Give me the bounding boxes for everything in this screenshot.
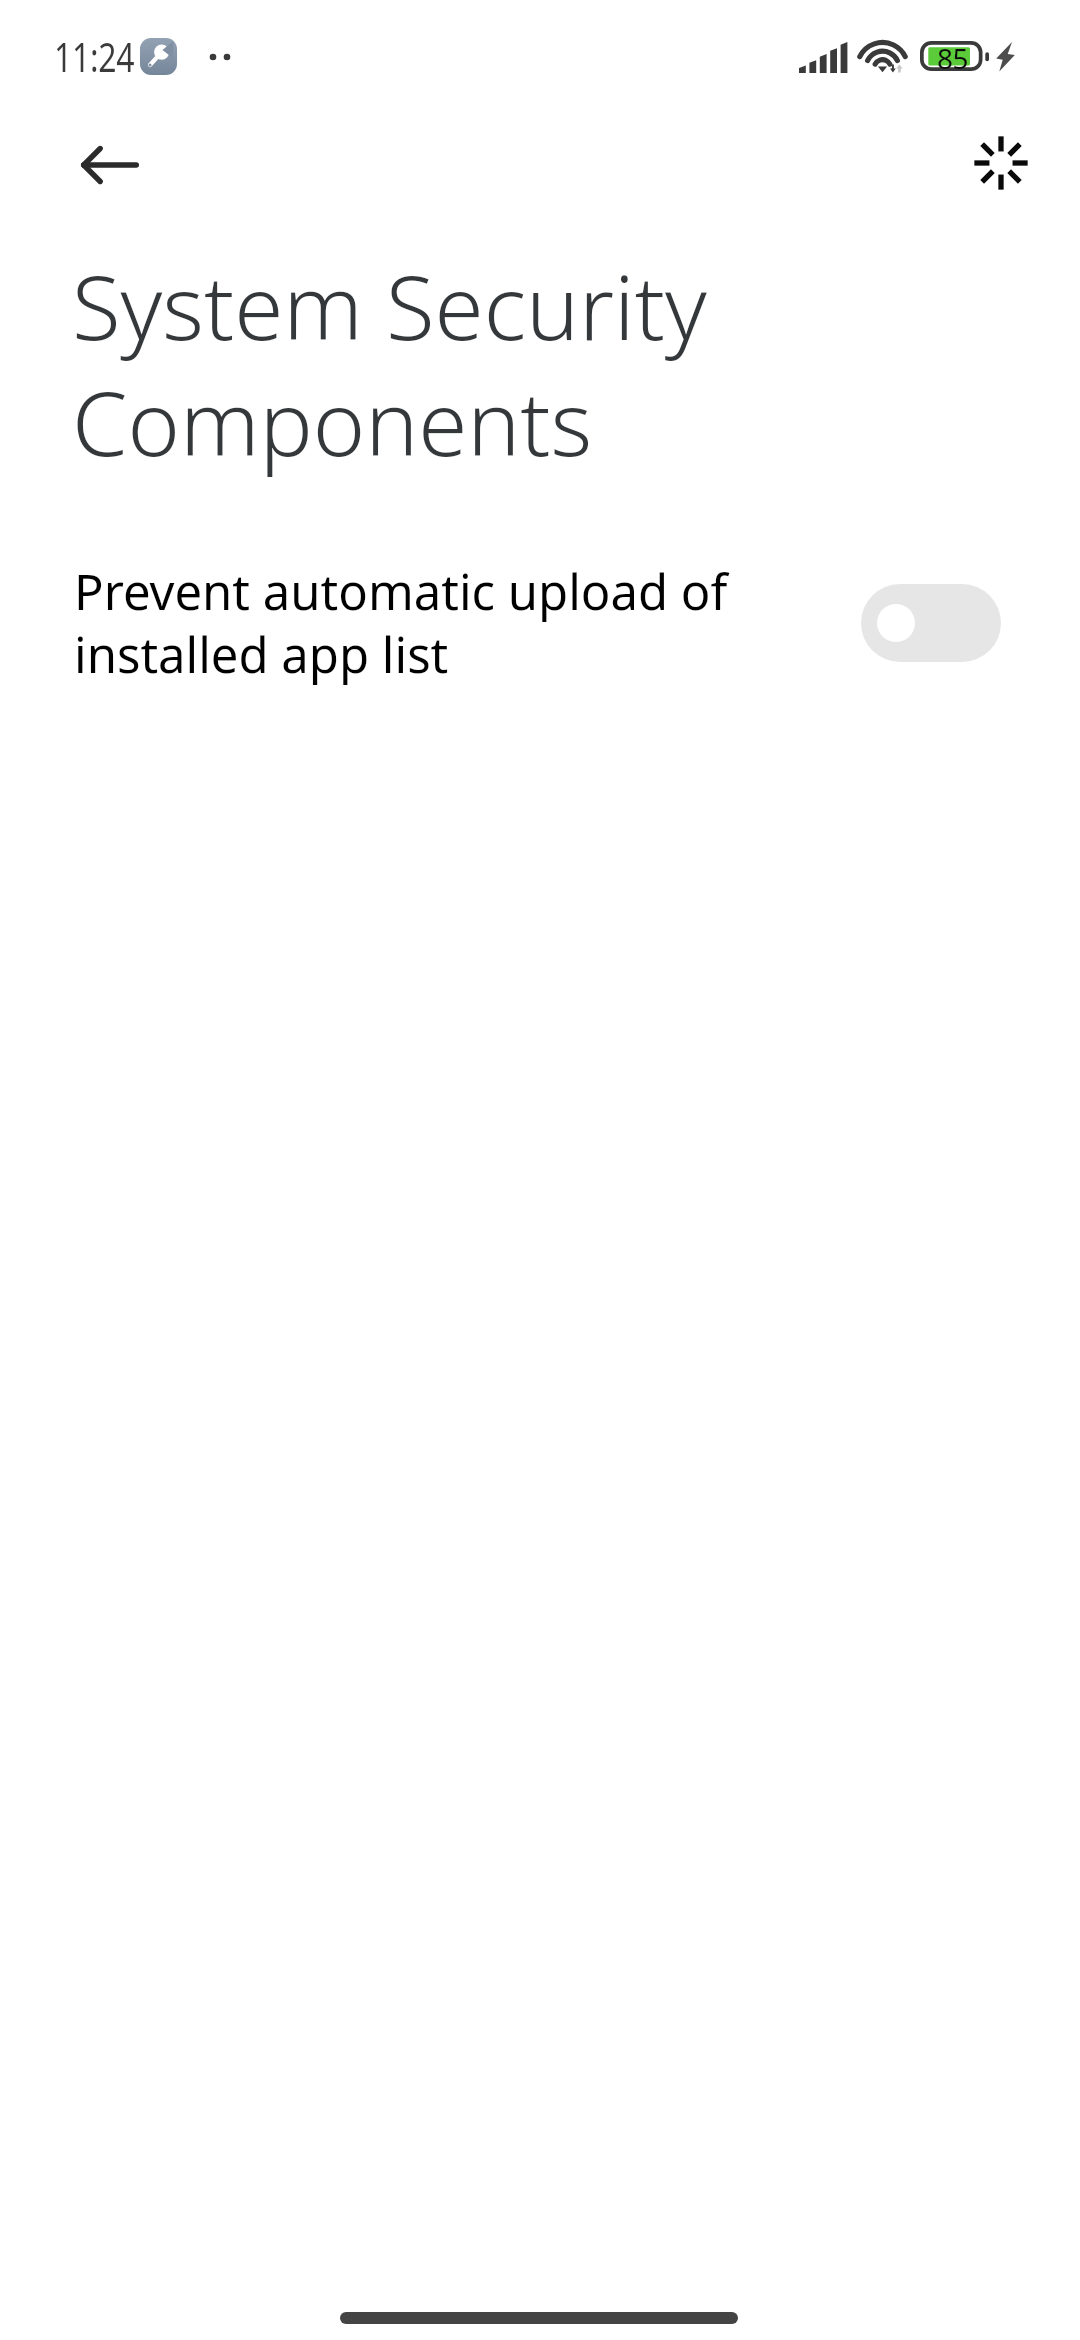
button[interactable]: Prevent automatic upload of installed ap… bbox=[861, 584, 1001, 662]
staticText: System Security Components bbox=[72, 245, 852, 482]
button[interactable]: Back bbox=[64, 121, 156, 209]
button[interactable]: Prevent automatic upload of installed ap… bbox=[0, 540, 1080, 706]
staticText: Prevent automatic upload of installed ap… bbox=[74, 558, 774, 688]
button[interactable]: Refresh bbox=[957, 119, 1045, 207]
staticText: 85 bbox=[937, 39, 968, 69]
staticText: 11:24 bbox=[54, 29, 135, 83]
